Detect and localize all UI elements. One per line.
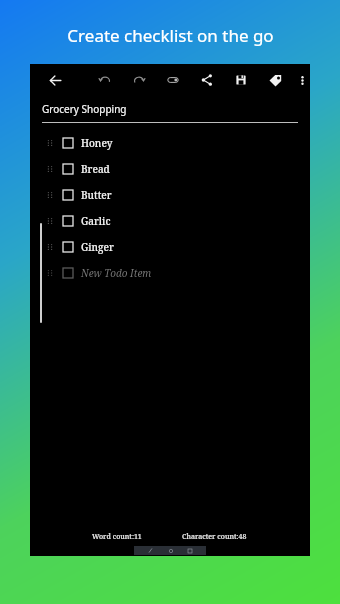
staticText: Ginger — [81, 240, 114, 254]
button[interactable]: Toggle checklist — [162, 65, 184, 95]
staticText: Character count:48 — [182, 532, 247, 542]
button[interactable]: Butter — [30, 182, 310, 208]
button[interactable]: Back — [147, 547, 154, 554]
staticText: Honey — [81, 136, 113, 150]
staticText: New Todo Item — [81, 266, 152, 280]
button[interactable]: Home — [167, 547, 174, 554]
staticText: Grocery Shopping — [42, 102, 127, 116]
button[interactable]: Tags — [264, 65, 286, 95]
button[interactable]: Share — [196, 65, 218, 95]
button[interactable]: Grocery Shopping — [30, 96, 310, 122]
staticText: Garlic — [81, 214, 111, 228]
button[interactable]: Honey — [30, 130, 310, 156]
button[interactable]: Ginger — [30, 234, 310, 260]
button[interactable]: Back — [44, 65, 66, 95]
staticText: Butter — [81, 188, 112, 202]
staticText: Create checklist on the go — [67, 24, 274, 47]
staticText: Bread — [81, 162, 110, 176]
button[interactable]: New Todo Item — [30, 260, 310, 286]
button[interactable]: Save — [230, 65, 252, 95]
button[interactable]: Redo — [128, 65, 150, 95]
button[interactable]: Recent apps — [186, 547, 193, 554]
button[interactable]: Undo — [94, 65, 116, 95]
staticText: Word count:11 — [92, 532, 142, 542]
button[interactable]: Garlic — [30, 208, 310, 234]
button[interactable]: Bread — [30, 156, 310, 182]
button[interactable]: More options — [294, 65, 310, 95]
